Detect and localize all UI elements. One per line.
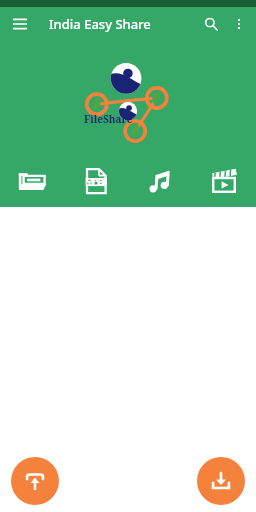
button[interactable]: Open navigation menu <box>8 12 32 36</box>
button[interactable]: More options <box>227 12 251 36</box>
staticText: India Easy Share <box>49 15 151 33</box>
button[interactable]: Files <box>0 154 64 207</box>
button[interactable]: Receive files <box>197 457 245 505</box>
staticText: FileShare <box>84 112 133 126</box>
button[interactable]: Send files <box>11 457 59 505</box>
button[interactable]: Videos <box>192 154 256 207</box>
button[interactable]: Search <box>199 12 223 36</box>
button[interactable]: Apps <box>64 154 128 207</box>
button[interactable]: Music <box>128 154 192 207</box>
